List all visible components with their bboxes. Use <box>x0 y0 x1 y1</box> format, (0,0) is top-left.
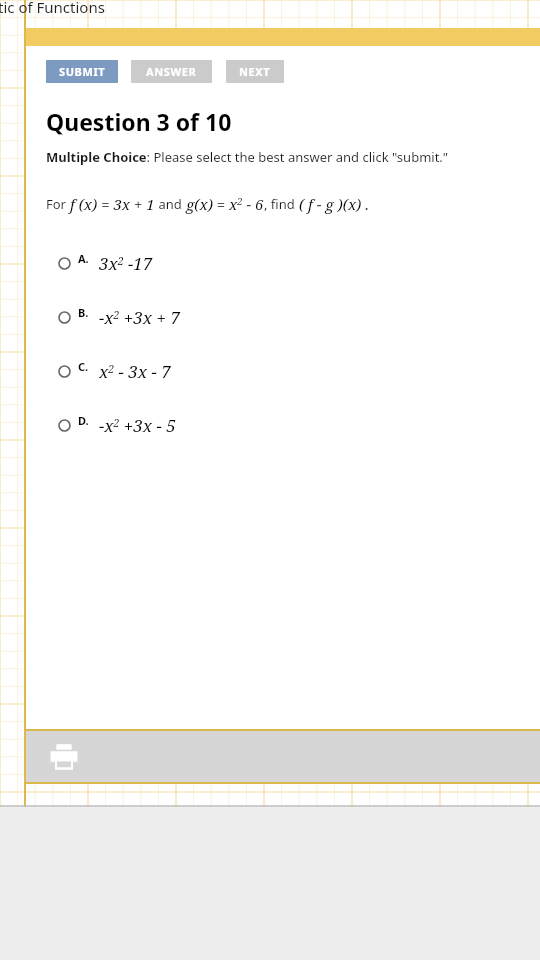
staticText: 3x2 −17 <box>99 252 153 275</box>
staticText: D. <box>78 413 89 428</box>
button[interactable]: NEXT <box>226 60 284 83</box>
button[interactable]: A. <box>26 236 540 290</box>
staticText: f (x) = 3x + 1 <box>70 194 155 214</box>
button[interactable]: D. <box>26 398 540 452</box>
staticText: Multiple Choice: Please select the best … <box>46 148 449 166</box>
staticText: ( f − g )(x) . <box>299 194 369 214</box>
staticText: For <box>46 195 70 213</box>
button[interactable]: C. <box>26 344 540 398</box>
button[interactable]: ANSWER <box>131 60 212 83</box>
staticText: x2 − 3x − 7 <box>99 360 171 383</box>
staticText: g(x) = x2 − 6 <box>186 194 264 214</box>
staticText: −x2 +3x − 5 <box>99 414 176 437</box>
button[interactable]: Print <box>44 737 84 777</box>
staticText: and <box>155 195 186 213</box>
staticText: Question 3 of 10 <box>46 106 232 137</box>
staticText: SUBMIT <box>59 64 106 79</box>
staticText: −x2 +3x + 7 <box>99 306 180 329</box>
staticText: ANSWER <box>146 64 197 79</box>
staticText: , find <box>264 195 299 213</box>
button[interactable]: SUBMIT <box>46 60 118 83</box>
button[interactable]: B. <box>26 290 540 344</box>
staticText: B. <box>78 305 89 320</box>
staticText: C. <box>78 359 89 374</box>
staticText: A. <box>78 251 89 266</box>
staticText: NEXT <box>239 64 271 79</box>
staticText: tic of Functions <box>0 0 105 17</box>
